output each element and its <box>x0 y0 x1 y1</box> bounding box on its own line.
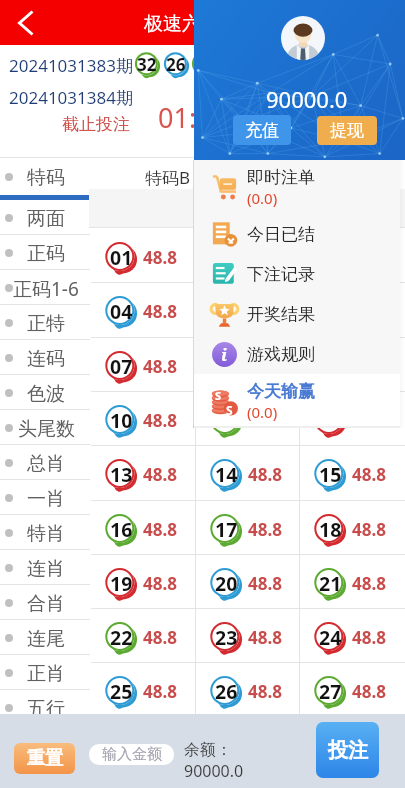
staticText: 连肖 <box>27 557 65 581</box>
button[interactable]: 下注记录 <box>193 254 400 294</box>
button[interactable]: 正特 <box>0 305 90 340</box>
button[interactable]: 投注 <box>316 722 379 778</box>
button[interactable]: 13 <box>91 445 195 499</box>
staticText: 连码 <box>27 347 65 371</box>
button[interactable]: i <box>193 334 400 374</box>
button[interactable]: 正码1-6 <box>0 270 90 305</box>
button[interactable]: 开奖结果 <box>193 294 400 334</box>
staticText: 23 <box>215 624 238 651</box>
button[interactable]: 提现 <box>317 116 377 145</box>
staticText: 09 <box>319 353 342 380</box>
button[interactable]: 19 <box>91 554 195 608</box>
staticText: 连尾 <box>27 627 65 651</box>
button[interactable]: 12 <box>300 391 404 445</box>
button[interactable]: 总肖 <box>0 445 90 480</box>
staticText: 头尾数 <box>18 417 75 441</box>
button[interactable]: 充值 <box>233 115 291 145</box>
button[interactable]: 色波 <box>0 375 90 410</box>
button[interactable]: 连肖 <box>0 550 90 585</box>
staticText: 90000.0 <box>266 84 348 114</box>
button[interactable]: 04 <box>91 282 195 336</box>
button[interactable]: 头尾数 <box>0 410 90 445</box>
button[interactable]: 17 <box>196 500 300 554</box>
staticText: 21 <box>319 570 342 597</box>
staticText: 11 <box>215 407 238 434</box>
button[interactable]: 26 <box>196 662 300 716</box>
staticText: 10 <box>110 407 133 434</box>
button[interactable]: 14 <box>196 445 300 499</box>
staticText: S <box>215 388 222 403</box>
button[interactable]: 15 <box>300 445 404 499</box>
staticText: 重置 <box>27 747 63 770</box>
staticText: 48.8 <box>248 572 282 595</box>
staticText: 27 <box>319 678 342 705</box>
staticText: S <box>226 402 233 418</box>
button[interactable]: 今日已结 <box>193 214 400 254</box>
staticText: 48.8 <box>248 680 282 703</box>
button[interactable]: 18 <box>300 500 404 554</box>
staticText: 余额： <box>184 740 232 760</box>
button[interactable]: 11 <box>196 391 300 445</box>
staticText: 26 <box>215 678 238 705</box>
staticText: 48.8 <box>143 355 177 378</box>
staticText: i <box>221 343 228 366</box>
staticText: 20241031384期 <box>9 86 133 109</box>
button[interactable]: 10 <box>91 391 195 445</box>
button[interactable]: Back <box>4 0 48 45</box>
staticText: 截止投注 <box>62 114 130 135</box>
staticText: 正特 <box>27 312 65 336</box>
button[interactable]: 03 <box>300 228 404 282</box>
button[interactable]: 特肖 <box>0 515 90 550</box>
button[interactable]: 一肖 <box>0 480 90 515</box>
staticText: 17 <box>215 516 238 543</box>
button[interactable]: 23 <box>196 608 300 662</box>
staticText: 04 <box>110 298 133 325</box>
button[interactable]: 即时注单 <box>193 160 400 214</box>
button[interactable]: S <box>193 374 400 428</box>
button[interactable]: 合肖 <box>0 585 90 620</box>
staticText: 26 <box>166 53 186 76</box>
button[interactable]: 16 <box>91 500 195 554</box>
button[interactable]: 09 <box>300 337 404 391</box>
button[interactable]: 27 <box>300 662 404 716</box>
button[interactable]: 06 <box>300 282 404 336</box>
button[interactable]: 05 <box>196 282 300 336</box>
button[interactable]: 输入金额 <box>89 744 174 765</box>
staticText: 48.8 <box>352 518 386 541</box>
staticText: 20241031383期 <box>9 54 133 77</box>
staticText: 48.8 <box>143 518 177 541</box>
staticText: 提现 <box>330 120 364 141</box>
staticText: 输入金额 <box>102 745 162 764</box>
staticText: 五行 <box>27 697 65 721</box>
button[interactable]: 07 <box>91 337 195 391</box>
button[interactable]: 21 <box>300 554 404 608</box>
button[interactable]: 两面 <box>0 200 90 235</box>
staticText: 08 <box>215 353 238 380</box>
staticText: 正肖 <box>27 662 65 686</box>
button[interactable]: 正码 <box>0 235 90 270</box>
staticText: 02 <box>215 244 238 271</box>
staticText: 01 <box>110 244 133 271</box>
staticText: 一肖 <box>27 487 65 511</box>
button[interactable]: 连尾 <box>0 620 90 655</box>
staticText: 90000.0 <box>184 760 244 782</box>
staticText: 05 <box>215 298 238 325</box>
button[interactable]: 特码 <box>0 158 90 200</box>
staticText: 05 <box>194 53 214 76</box>
button[interactable]: 连码 <box>0 340 90 375</box>
button[interactable]: 重置 <box>14 743 75 774</box>
staticText: 48.8 <box>143 409 177 432</box>
button[interactable]: 25 <box>91 662 195 716</box>
button[interactable]: 20 <box>196 554 300 608</box>
button[interactable]: 01 <box>91 228 195 282</box>
button[interactable]: 正肖 <box>0 655 90 690</box>
button[interactable]: 08 <box>196 337 300 391</box>
button[interactable]: 22 <box>91 608 195 662</box>
staticText: 下注记录 <box>247 264 315 285</box>
button[interactable]: 02 <box>196 228 300 282</box>
button[interactable]: 24 <box>300 608 404 662</box>
staticText: 总肖 <box>27 452 65 476</box>
staticText: 两面 <box>27 207 65 231</box>
staticText: 25 <box>110 678 133 705</box>
button[interactable]: 五行 <box>0 690 90 725</box>
